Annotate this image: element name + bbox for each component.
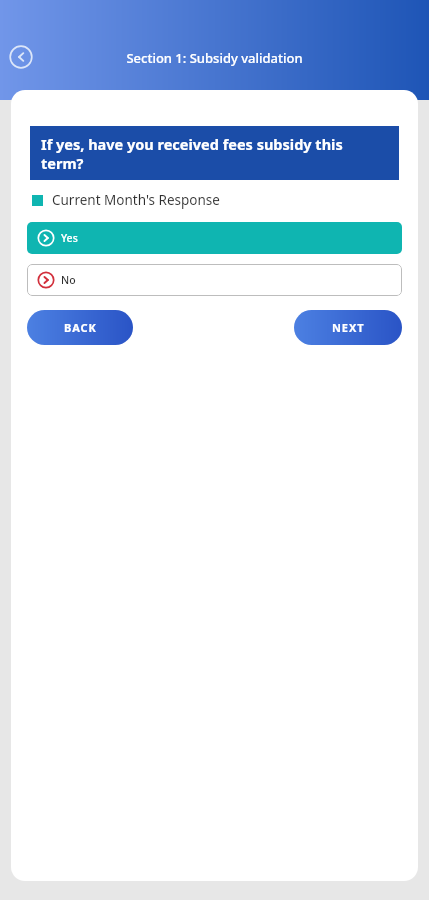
staticText: No [61,273,76,287]
staticText: If yes, have you received fees subsidy t… [41,134,388,173]
staticText: Current Month's Response [52,191,220,209]
staticText: Yes [61,231,78,245]
button[interactable]: No [27,264,402,296]
button[interactable]: Yes [27,222,402,254]
button[interactable]: Back [8,44,34,70]
staticText: Section 1: Subsidy validation [0,49,429,67]
staticText: NEXT [332,320,365,335]
button[interactable]: NEXT [294,310,402,345]
staticText: BACK [64,320,97,335]
button[interactable]: BACK [27,310,133,345]
